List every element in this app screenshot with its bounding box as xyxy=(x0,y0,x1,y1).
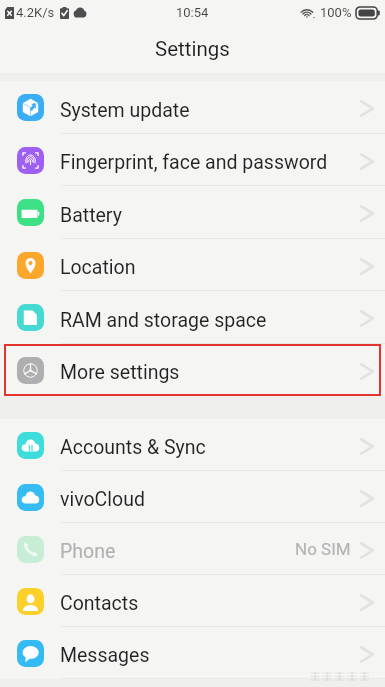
staticText: 100% xyxy=(320,5,352,20)
button[interactable]: RAM and storage space xyxy=(0,291,385,344)
staticText: Settings xyxy=(155,37,230,61)
button[interactable]: Accounts & Sync xyxy=(0,419,385,471)
staticText: More settings xyxy=(60,361,180,384)
staticText: Accounts & Sync xyxy=(60,436,206,459)
button[interactable]: More settings xyxy=(0,344,385,396)
button[interactable]: Location xyxy=(0,239,385,291)
staticText: 4.2K/s xyxy=(16,5,55,20)
button[interactable]: Contacts xyxy=(0,575,385,627)
staticText: Battery xyxy=(60,204,122,227)
button[interactable]: Messages xyxy=(0,627,385,679)
button[interactable]: System update xyxy=(0,81,385,134)
staticText: Fingerprint, face and password xyxy=(60,151,328,174)
staticText: RAM and storage space xyxy=(60,309,267,332)
staticText: Messages xyxy=(60,644,150,667)
button[interactable]: Phone xyxy=(0,523,385,575)
staticText: Location xyxy=(60,256,136,279)
staticText: System update xyxy=(60,99,190,122)
button[interactable]: Battery xyxy=(0,186,385,239)
button[interactable]: Fingerprint, face and password xyxy=(0,134,385,186)
staticText: Contacts xyxy=(60,592,139,615)
staticText: vivoCloud xyxy=(60,488,145,511)
staticText: 10:54 xyxy=(176,5,209,20)
staticText: Phone xyxy=(60,540,116,563)
staticText: No SIM xyxy=(295,539,351,559)
button[interactable]: vivoCloud xyxy=(0,471,385,523)
